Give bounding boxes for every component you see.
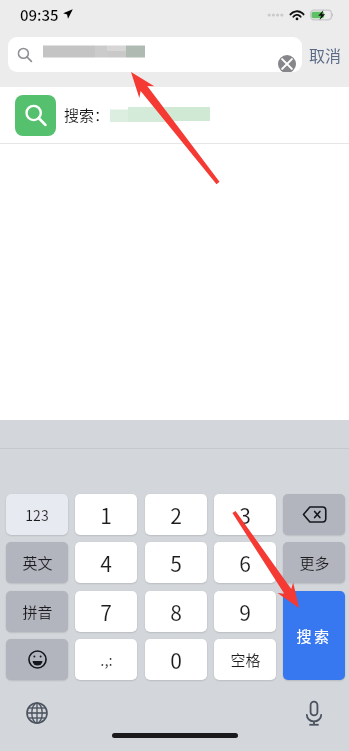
staticText: 英文 xyxy=(22,552,53,574)
staticText: 3 xyxy=(239,500,251,530)
button[interactable]: 搜索 xyxy=(283,591,345,680)
staticText: 2 xyxy=(170,500,182,530)
staticText: 123 xyxy=(25,505,49,525)
staticText: 取消 xyxy=(309,43,342,66)
staticText: 7 xyxy=(100,597,112,627)
staticText: 9 xyxy=(239,597,251,627)
staticText: 4 xyxy=(100,548,112,578)
button[interactable]: 更多 xyxy=(283,542,345,583)
button[interactable]: 5 xyxy=(145,542,207,583)
button[interactable]: 7 xyxy=(75,591,137,632)
staticText: .,: xyxy=(100,649,113,671)
staticText: 更多 xyxy=(299,552,330,574)
button[interactable]: Voice input xyxy=(299,698,329,728)
button[interactable]: 英文 xyxy=(6,542,68,583)
button[interactable]: Clear xyxy=(8,37,302,72)
button[interactable]: 8 xyxy=(145,591,207,632)
button[interactable]: 拼音 xyxy=(6,591,68,632)
staticText: 1 xyxy=(100,500,112,530)
button[interactable]: 空格 xyxy=(214,639,276,680)
button[interactable]: 搜索： xyxy=(0,87,349,143)
staticText: 空格 xyxy=(230,649,261,671)
button[interactable]: 6 xyxy=(214,542,276,583)
button[interactable]: 1 xyxy=(75,494,137,535)
button[interactable]: 3 xyxy=(214,494,276,535)
button[interactable]: Clear xyxy=(278,55,296,72)
staticText: 5 xyxy=(170,548,182,578)
staticText: 拼音 xyxy=(22,601,53,623)
button[interactable]: 9 xyxy=(214,591,276,632)
staticText: 搜索 xyxy=(296,625,332,647)
button[interactable]: 取消 xyxy=(302,37,349,72)
button[interactable]: 123 xyxy=(6,494,68,535)
staticText: 搜索： xyxy=(64,104,110,126)
button[interactable]: .,: xyxy=(75,639,137,680)
button[interactable]: 4 xyxy=(75,542,137,583)
staticText: 6 xyxy=(239,548,251,578)
staticText: 09:35 xyxy=(20,4,59,26)
button[interactable]: Backspace xyxy=(283,494,345,535)
button[interactable]: 2 xyxy=(145,494,207,535)
button[interactable]: Emoji xyxy=(6,639,68,680)
button[interactable]: 0 xyxy=(145,639,207,680)
staticText: 8 xyxy=(170,597,182,627)
button[interactable]: Change keyboard xyxy=(22,698,52,728)
staticText: 0 xyxy=(170,645,182,675)
